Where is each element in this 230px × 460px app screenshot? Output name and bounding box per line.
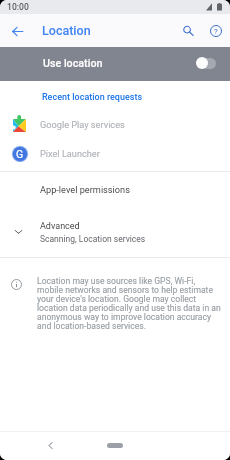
button[interactable]: Search — [176, 19, 200, 43]
staticText: Google Play services — [40, 119, 125, 130]
staticText: Location may use sources like GPS, Wi-Fi… — [37, 276, 221, 331]
button[interactable]: Back — [5, 19, 29, 43]
staticText: G — [16, 148, 24, 160]
button[interactable]: Google Play services — [0, 110, 230, 139]
staticText: Advanced — [40, 221, 80, 232]
staticText: Use location — [43, 57, 103, 70]
staticText: Scanning, Location services — [40, 234, 146, 244]
button[interactable]: Help — [204, 19, 228, 43]
button[interactable]: Home — [107, 443, 123, 448]
staticText: Location — [42, 23, 91, 38]
button[interactable]: Use location — [0, 47, 230, 81]
staticText: ? — [214, 27, 218, 36]
button[interactable]: Back — [43, 438, 57, 452]
button[interactable]: G — [0, 139, 230, 168]
staticText: Recent location requests — [42, 92, 143, 103]
button[interactable]: Advanced — [0, 212, 230, 250]
staticText: Pixel Launcher — [40, 148, 100, 159]
staticText: 10:00 — [7, 2, 29, 12]
staticText: App-level permissions — [40, 184, 130, 195]
